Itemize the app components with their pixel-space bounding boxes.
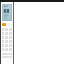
button[interactable]: Power	[2, 23, 6, 26]
button[interactable]: Power	[1, 2, 13, 64]
button[interactable]	[2, 4, 12, 21]
